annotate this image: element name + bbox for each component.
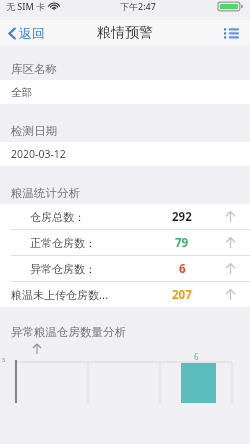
staticText: 5 [2, 356, 6, 364]
staticText: 6 [194, 351, 199, 362]
staticText: 粮温未上传仓房数... [11, 287, 108, 302]
staticText: 正常仓房数： [30, 236, 96, 250]
button[interactable]: 正常仓房数： [0, 230, 250, 255]
staticText: 库区名称 [11, 62, 57, 76]
staticText: 292 [172, 209, 192, 225]
staticText: 无 SIM 卡 [6, 0, 46, 12]
button[interactable]: 异常仓房数： [0, 256, 250, 281]
staticText: 全部 [11, 86, 32, 99]
button[interactable]: 2020-03-12 [0, 142, 250, 166]
staticText: 粮温统计分析 [11, 186, 80, 200]
staticText: 检测日期 [11, 124, 57, 138]
staticText: 粮情预警 [97, 24, 153, 42]
button[interactable]: 仓房总数： [0, 204, 250, 229]
staticText: 207 [172, 287, 192, 303]
button[interactable]: 返回 [6, 22, 47, 44]
staticText: 仓房总数： [30, 210, 85, 224]
staticText: 6 [179, 261, 186, 277]
button[interactable]: 列表 [221, 24, 242, 42]
staticText: 返回 [19, 25, 45, 41]
staticText: 79 [175, 235, 189, 251]
button[interactable]: 粮温未上传仓房数... [0, 282, 250, 307]
staticText: 异常仓房数： [30, 262, 96, 276]
staticText: 下午2:47 [120, 0, 156, 12]
button[interactable]: 全部 [0, 80, 250, 104]
staticText: 2020-03-12 [11, 147, 66, 161]
staticText: 异常粮温仓房数量分析 [11, 325, 126, 339]
